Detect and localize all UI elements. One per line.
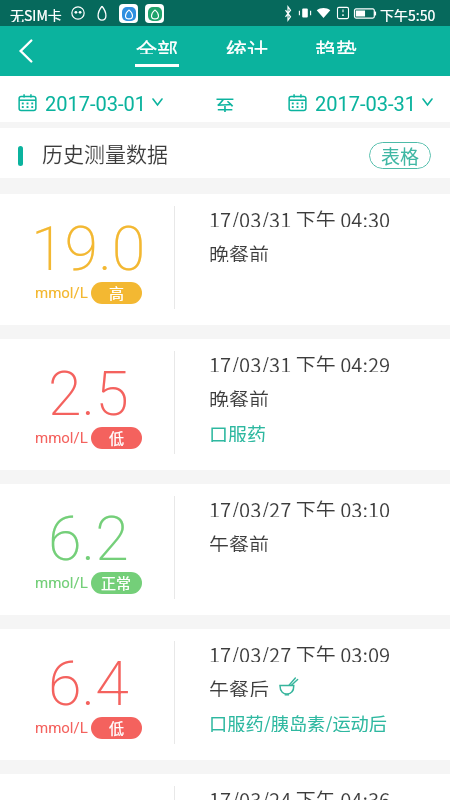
button[interactable]: 6.4 — [0, 629, 450, 760]
staticText: 统计 — [226, 34, 268, 54]
staticText: 19.0 — [31, 213, 146, 281]
button[interactable]: 19.0 — [0, 194, 450, 325]
staticText: 2017-03-01 — [45, 92, 146, 112]
staticText: 6.2 — [48, 503, 129, 571]
staticText: 趋势 — [315, 34, 357, 54]
staticText: 17/03/27 下午 03:09 — [209, 640, 391, 662]
button[interactable]: 全部 — [135, 26, 179, 76]
staticText: 无SIM卡 — [10, 5, 62, 22]
staticText: 口服药/胰岛素/运动后 — [209, 710, 387, 732]
staticText: 表格 — [381, 142, 420, 169]
staticText: 口服药 — [209, 420, 267, 442]
staticText: mmol/L — [35, 429, 88, 447]
staticText: 下午5:50 — [380, 5, 436, 22]
staticText: 2.5 — [48, 358, 129, 426]
staticText: 午餐前 — [209, 530, 269, 552]
button[interactable]: 趋势 — [314, 26, 358, 76]
staticText: 至 — [215, 92, 235, 112]
button[interactable]: 2.5 — [0, 339, 450, 470]
staticText: 历史测量数据 — [42, 138, 168, 168]
staticText: 低 — [109, 427, 125, 449]
staticText: mmol/L — [35, 574, 88, 592]
staticText: 午餐后 — [209, 675, 269, 697]
staticText: 晚餐前 — [209, 385, 269, 407]
staticText: 晚餐前 — [209, 240, 269, 262]
staticText: mmol/L — [35, 284, 88, 302]
staticText: 17/03/31 下午 04:30 — [209, 205, 391, 227]
staticText: 17/03/27 下午 03:10 — [209, 495, 391, 517]
staticText: 6.4 — [48, 648, 129, 716]
button[interactable]: 2017-03-01 — [18, 92, 163, 112]
staticText: 全部 — [136, 34, 178, 54]
staticText: 正常 — [101, 572, 132, 594]
staticText: mmol/L — [35, 719, 88, 737]
button[interactable]: Back — [0, 26, 52, 76]
staticText: 高 — [109, 282, 125, 304]
button[interactable]: 统计 — [225, 26, 269, 76]
button[interactable]: 2017-03-31 — [288, 92, 433, 112]
staticText: 17/03/31 下午 04:29 — [209, 350, 391, 372]
staticText: 低 — [109, 717, 125, 739]
button[interactable]: 表格 — [369, 142, 431, 169]
button[interactable]: 7.1 — [0, 774, 450, 800]
staticText: 2017-03-31 — [315, 92, 416, 112]
button[interactable]: 6.2 — [0, 484, 450, 615]
staticText: 17/03/24 下午 04:36 — [209, 785, 391, 800]
